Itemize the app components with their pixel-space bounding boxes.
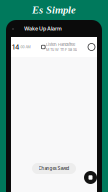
staticText: M Tu W Th F Sa Su bbox=[46, 47, 77, 52]
staticText: 14 bbox=[12, 43, 19, 51]
staticText: Listen: Handsfree bbox=[46, 42, 75, 47]
button[interactable]: Back bbox=[9, 25, 17, 33]
staticText: Es Simple bbox=[32, 4, 76, 16]
button[interactable]: Changes Saved bbox=[32, 163, 76, 174]
button[interactable]: Compose bbox=[84, 171, 97, 184]
staticText: Wake Up Alarm bbox=[24, 25, 62, 32]
button[interactable]: 14 bbox=[11, 37, 97, 57]
staticText: Changes Saved bbox=[38, 166, 69, 171]
staticText: :00 AM bbox=[20, 45, 31, 49]
